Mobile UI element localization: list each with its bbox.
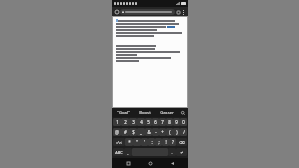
button[interactable]: Home — [144, 158, 156, 168]
staticText: : — [151, 139, 153, 145]
staticText: & — [147, 129, 151, 135]
button[interactable]: Tabs — [175, 9, 181, 15]
staticText: 1 — [116, 119, 119, 125]
staticText: # — [124, 129, 127, 135]
button[interactable]: + — [159, 128, 166, 136]
button[interactable]: ABC — [113, 148, 124, 156]
button[interactable]: . — [168, 148, 176, 156]
staticText: " — [136, 139, 138, 145]
button[interactable]: ) — [173, 128, 180, 136]
staticText: - — [155, 129, 157, 135]
button[interactable]: Back — [166, 158, 178, 168]
staticText: / — [183, 129, 185, 135]
button[interactable] — [120, 9, 175, 15]
staticText: @ — [115, 129, 119, 135]
button[interactable]: , — [124, 148, 132, 156]
staticText: ( — [169, 129, 171, 135]
staticText: * — [128, 139, 131, 145]
button[interactable]: ; — [155, 138, 162, 146]
button[interactable]: 5 — [145, 118, 152, 126]
button[interactable]: $ — [129, 128, 137, 136]
staticText: , — [127, 150, 129, 155]
staticText: ? — [172, 139, 174, 145]
button[interactable]: 3 — [129, 118, 137, 126]
button[interactable]: Gasser — [156, 108, 178, 117]
staticText: "Goal" — [117, 110, 130, 116]
staticText: =\< — [116, 140, 122, 145]
staticText: 8 — [168, 119, 171, 125]
button[interactable]: : — [148, 138, 155, 146]
button[interactable]: Search — [178, 108, 188, 117]
button[interactable]: # — [121, 128, 129, 136]
button[interactable]: ( — [166, 128, 173, 136]
button[interactable]: - — [152, 128, 159, 136]
button[interactable]: ? — [169, 138, 176, 146]
button[interactable]: / — [180, 128, 187, 136]
button[interactable]: =\< — [113, 138, 125, 146]
staticText: ABC — [115, 150, 123, 155]
button[interactable]: 4 — [137, 118, 145, 126]
button[interactable]: 2 — [121, 118, 129, 126]
button[interactable]: _ — [137, 128, 145, 136]
button[interactable]: 9 — [173, 118, 180, 126]
staticText: Boost — [139, 110, 151, 116]
button[interactable]: 6 — [152, 118, 159, 126]
button[interactable]: "Goal" — [112, 108, 134, 117]
staticText: 5 — [147, 119, 150, 125]
button[interactable]: " — [133, 138, 141, 146]
staticText: + — [161, 129, 164, 135]
staticText: . — [171, 150, 173, 155]
staticText: ; — [158, 139, 160, 145]
button[interactable]: Recents — [122, 158, 134, 168]
button[interactable]: Boost — [134, 108, 156, 117]
staticText: Gasser — [160, 110, 174, 116]
staticText: ↵ — [180, 150, 184, 154]
button[interactable]: 7 — [159, 118, 166, 126]
staticText: 3 — [132, 119, 135, 125]
button[interactable]: ' — [141, 138, 148, 146]
button[interactable]: More options — [181, 10, 186, 15]
staticText: 0 — [182, 119, 185, 125]
staticText: _ — [140, 129, 142, 135]
button[interactable]: Enter — [176, 148, 187, 156]
staticText: ' — [144, 139, 145, 145]
staticText: 4 — [140, 119, 143, 125]
button[interactable]: & — [145, 128, 152, 136]
button[interactable]: 0 — [180, 118, 187, 126]
staticText: $ — [132, 129, 135, 135]
staticText: ) — [176, 129, 178, 135]
button[interactable]: * — [125, 138, 133, 146]
button[interactable]: 1 — [113, 118, 121, 126]
button[interactable]: @ — [113, 128, 121, 136]
staticText: ! — [165, 139, 167, 145]
button[interactable]: 8 — [166, 118, 173, 126]
button[interactable]: Home — [114, 9, 120, 15]
button[interactable]: ! — [162, 138, 169, 146]
staticText: ⌫ — [179, 140, 185, 144]
staticText: 7 — [161, 119, 164, 125]
staticText: 6 — [154, 119, 157, 125]
staticText: 9 — [175, 119, 178, 125]
button[interactable]: Backspace — [176, 138, 187, 146]
staticText: 2 — [124, 119, 127, 125]
